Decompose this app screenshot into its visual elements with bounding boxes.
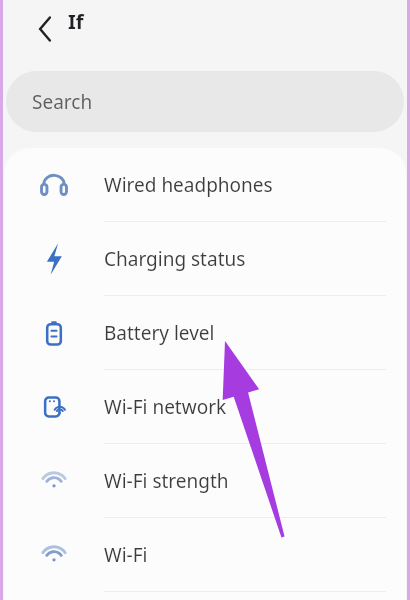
staticText: If [68, 8, 84, 35]
staticText: Wi-Fi [104, 542, 148, 568]
staticText: Wi-Fi network [104, 394, 227, 420]
button[interactable]: Wired headphones [4, 148, 406, 221]
button[interactable]: Wi-Fi strength [4, 444, 406, 517]
staticText: Wired headphones [104, 172, 273, 198]
button[interactable]: Wi-Fi [4, 518, 406, 591]
staticText: Battery level [104, 320, 215, 346]
button[interactable]: Battery level [4, 296, 406, 369]
button[interactable]: Search [6, 71, 404, 132]
button[interactable]: Charging status [4, 222, 406, 295]
staticText: Wi-Fi strength [104, 468, 229, 494]
staticText: Charging status [104, 246, 246, 272]
staticText: Search [32, 89, 93, 115]
button[interactable]: Wi-Fi network [4, 370, 406, 443]
button[interactable]: Back [26, 10, 64, 48]
